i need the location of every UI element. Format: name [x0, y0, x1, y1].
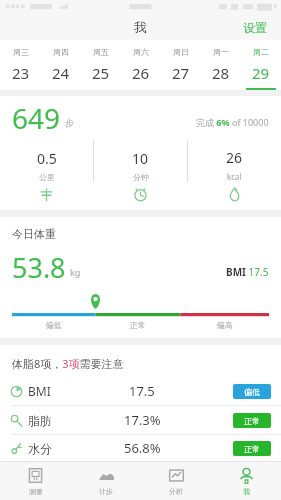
staticText: 偏低 — [244, 387, 260, 397]
staticText: 周日 — [173, 47, 189, 57]
staticText: kcal — [227, 171, 242, 182]
staticText: 计步 — [99, 487, 113, 496]
staticText: 24 — [52, 63, 70, 83]
button[interactable]: 水分 — [0, 435, 281, 461]
button[interactable]: 设置 — [229, 16, 281, 39]
staticText: 分析 — [169, 487, 183, 496]
staticText: 29 — [252, 63, 270, 83]
staticText: 偏低 — [12, 320, 95, 330]
button[interactable]: 脂肪 — [0, 406, 281, 434]
staticText: 今日体重 — [12, 227, 56, 241]
staticText: kg — [70, 266, 81, 278]
staticText: 10 — [132, 149, 149, 168]
staticText: 正常 — [244, 416, 260, 426]
button[interactable]: 周五 — [81, 40, 121, 90]
staticText: 28 — [212, 63, 230, 83]
staticText: 周五 — [93, 47, 109, 57]
button[interactable]: 周六 — [121, 40, 161, 90]
staticText: 56.8% — [124, 439, 161, 457]
staticText: 正常 — [95, 320, 180, 330]
staticText: 27 — [172, 63, 190, 83]
button[interactable]: 测量 — [0, 462, 71, 500]
staticText: 水分 — [28, 441, 52, 456]
button[interactable]: 周三 — [0, 40, 41, 90]
staticText: 649 — [12, 99, 61, 137]
staticText: 设置 — [243, 20, 267, 35]
staticText: BMI — [28, 383, 51, 399]
staticText: 偏高 — [180, 320, 269, 330]
staticText: 周三 — [13, 47, 29, 57]
staticText: 26 — [132, 63, 150, 83]
staticText: 17.5 — [129, 382, 155, 400]
button[interactable]: 正常 — [233, 413, 271, 428]
staticText: 测量 — [29, 487, 43, 496]
staticText: 体脂8项，3项需要注意 — [12, 356, 124, 371]
staticText: 分钟 — [133, 172, 149, 182]
staticText: 0.5 — [37, 149, 57, 168]
staticText: 17.3% — [124, 411, 161, 429]
button[interactable]: 我 — [211, 462, 281, 500]
staticText: 25 — [92, 63, 110, 83]
staticText: 周二 — [253, 47, 269, 57]
button[interactable]: 周日 — [161, 40, 201, 90]
staticText: 26 — [226, 148, 243, 167]
button[interactable]: 周四 — [41, 40, 81, 90]
staticText: 步 — [65, 117, 74, 128]
button[interactable]: 正常 — [233, 441, 271, 456]
button[interactable]: 计步 — [71, 462, 141, 500]
button[interactable]: 分析 — [141, 462, 211, 500]
button[interactable]: BMI — [0, 377, 281, 405]
button[interactable]: 10 — [94, 140, 187, 210]
staticText: 正常 — [244, 444, 260, 454]
staticText: 我 — [243, 487, 250, 496]
staticText: 周四 — [53, 47, 69, 57]
staticText: 公里 — [39, 172, 55, 182]
button[interactable]: 偏低 — [233, 384, 271, 399]
staticText: 我 — [134, 19, 147, 35]
staticText: 脂肪 — [28, 413, 52, 428]
staticText: 周六 — [133, 47, 149, 57]
staticText: 完成 6% of 10000 — [196, 116, 269, 128]
button[interactable]: 26 — [188, 140, 281, 210]
staticText: 23 — [12, 63, 30, 83]
button[interactable]: 周一 — [201, 40, 241, 90]
staticText: BMI 17.5 — [226, 265, 269, 279]
staticText: 53.8 — [12, 249, 66, 286]
button[interactable]: 0.5 — [0, 140, 93, 210]
staticText: 周一 — [213, 47, 229, 57]
button[interactable]: 周二 — [241, 40, 281, 90]
